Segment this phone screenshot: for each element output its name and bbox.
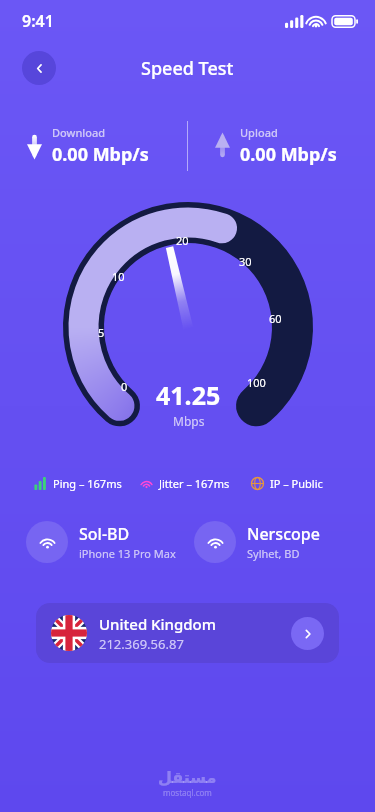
staticText: IP – Public [270,476,323,491]
button[interactable]: Upload [214,125,375,167]
staticText: Jitter – 167ms [159,476,230,491]
staticText: Download [52,125,106,140]
staticText: 60 [269,311,282,326]
staticText: Sylhet, BD [247,546,300,561]
button[interactable]: IP – Public [251,476,351,491]
staticText: United Kingdom [99,614,216,634]
staticText: 0 [121,379,128,394]
staticText: 212.369.56.87 [99,635,184,653]
button[interactable]: Jitter – 167ms [140,476,251,491]
button[interactable]: Back [22,51,56,85]
staticText: mostaql.com [163,787,212,798]
button[interactable]: Download [26,125,187,167]
button[interactable]: Sol-BD [26,521,194,563]
staticText: Ping – 167ms [53,476,122,491]
staticText: Mbps [173,413,205,429]
staticText: Sol-BD [79,523,130,545]
staticText: 20 [176,233,189,248]
staticText: 10 [112,269,125,284]
staticText: 30 [239,254,252,269]
staticText: 5 [98,325,105,340]
staticText: iPhone 13 Pro Max [79,546,176,561]
button[interactable]: Nerscope [194,521,363,563]
button[interactable]: Open details [291,617,324,650]
staticText: Upload [240,125,278,140]
staticText: 0.00 Mbp/s [240,142,337,167]
staticText: 41.25 [156,378,221,412]
button[interactable]: Ping – 167ms [34,476,140,491]
staticText: مستقل [158,768,217,787]
button[interactable]: United Kingdom [36,603,339,663]
staticText: 0.00 Mbp/s [52,142,149,167]
staticText: Nerscope [247,523,320,545]
staticText: Speed Test [141,56,234,81]
staticText: 9:41 [22,10,54,32]
staticText: 100 [247,375,266,390]
